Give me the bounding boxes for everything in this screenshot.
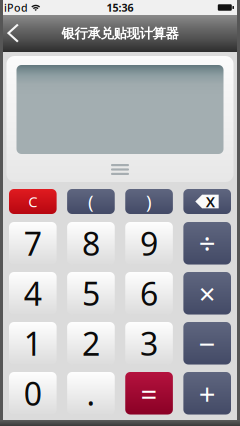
staticText: 银行承兑贴现计算器: [61, 25, 178, 42]
button[interactable]: +: [183, 372, 231, 414]
button[interactable]: 3: [125, 322, 173, 364]
staticText: C: [28, 192, 37, 211]
button[interactable]: ÷: [183, 222, 231, 264]
staticText: 7: [24, 222, 42, 264]
button[interactable]: 6: [125, 272, 173, 314]
staticText: iPod: [4, 0, 28, 15]
staticText: 15:36: [106, 0, 133, 15]
staticText: −: [199, 324, 216, 363]
button[interactable]: Delete: [183, 189, 231, 214]
button[interactable]: −: [183, 322, 231, 364]
button[interactable]: .: [67, 372, 115, 414]
button[interactable]: 5: [67, 272, 115, 314]
staticText: ÷: [199, 224, 216, 263]
staticText: (: [88, 189, 94, 214]
button[interactable]: ): [125, 189, 173, 214]
staticText: 1: [24, 322, 42, 364]
button[interactable]: C: [9, 189, 57, 214]
button[interactable]: 9: [125, 222, 173, 264]
staticText: =: [141, 374, 158, 413]
staticText: 3: [140, 322, 158, 364]
button[interactable]: 8: [67, 222, 115, 264]
staticText: 6: [140, 272, 158, 314]
staticText: +: [199, 374, 216, 413]
staticText: X: [206, 192, 215, 211]
button[interactable]: ×: [183, 272, 231, 314]
staticText: 0: [24, 372, 42, 414]
staticText: 4: [24, 272, 42, 314]
staticText: 8: [82, 222, 100, 264]
staticText: 2: [82, 322, 100, 364]
staticText: .: [86, 372, 95, 414]
button[interactable]: 0: [9, 372, 57, 414]
staticText: ×: [199, 274, 216, 313]
staticText: 9: [140, 222, 158, 264]
button[interactable]: 7: [9, 222, 57, 264]
button[interactable]: =: [125, 372, 173, 414]
staticText: ): [146, 189, 152, 214]
staticText: 5: [82, 272, 100, 314]
button[interactable]: 2: [67, 322, 115, 364]
button[interactable]: (: [67, 189, 115, 214]
button[interactable]: 4: [9, 272, 57, 314]
button[interactable]: Back: [0, 15, 34, 52]
button[interactable]: 1: [9, 322, 57, 364]
